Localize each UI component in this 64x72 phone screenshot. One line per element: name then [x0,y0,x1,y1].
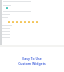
staticText: Custom Widgets [18,61,46,66]
staticText: Easy To Use [22,56,42,61]
